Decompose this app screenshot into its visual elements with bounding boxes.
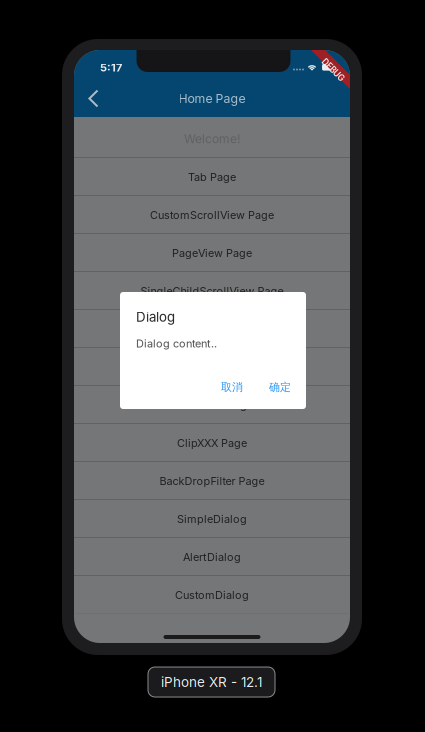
button[interactable]: BackDropFilter Page: [74, 462, 350, 500]
staticText: PageView Page: [172, 246, 252, 259]
button[interactable]: 取消: [213, 374, 251, 400]
staticText: Welcome!: [184, 132, 240, 146]
button[interactable]: Transform Page: [74, 386, 350, 424]
staticText: 确定: [269, 380, 291, 394]
button[interactable]: SimpleDialog: [74, 500, 350, 538]
staticText: 取消: [221, 380, 243, 394]
staticText: iPhone XR - 12.1: [161, 674, 262, 690]
staticText: SingleChildScrollView Page: [140, 284, 283, 297]
staticText: DEBUG: [319, 65, 347, 75]
button[interactable]: 确定: [261, 374, 299, 400]
staticText: ClipXXX Page: [177, 436, 247, 449]
button[interactable]: CustomDialog: [74, 576, 350, 614]
button[interactable]: ClipXXX Page: [74, 424, 350, 462]
staticText: NestedScrollView Page: [152, 322, 272, 335]
button[interactable]: iPhone XR - 12.1: [148, 667, 275, 697]
button[interactable]: Tab Page: [74, 158, 350, 196]
button[interactable]: Stack Page: [74, 348, 350, 386]
staticText: Tab Page: [188, 170, 236, 183]
staticText: Dialog content..: [136, 337, 217, 350]
button[interactable]: AlertDialog: [74, 538, 350, 576]
button[interactable]: Welcome!: [74, 120, 350, 158]
staticText: SimpleDialog: [177, 512, 247, 525]
staticText: BackDropFilter Page: [159, 474, 264, 487]
staticText: Home Page: [178, 91, 245, 106]
button[interactable]: SingleChildScrollView Page: [74, 272, 350, 310]
staticText: CustomScrollView Page: [150, 208, 274, 221]
staticText: Transform Page: [171, 398, 253, 411]
staticText: CustomDialog: [175, 588, 249, 601]
staticText: 5:17: [100, 61, 122, 74]
button[interactable]: Back: [74, 80, 112, 117]
staticText: Dialog: [136, 309, 175, 325]
button[interactable]: NestedScrollView Page: [74, 310, 350, 348]
staticText: AlertDialog: [183, 550, 241, 563]
button[interactable]: PageView Page: [74, 234, 350, 272]
button[interactable]: CustomScrollView Page: [74, 196, 350, 234]
